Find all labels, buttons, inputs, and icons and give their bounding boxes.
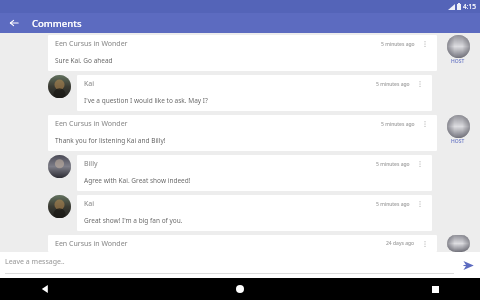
staticText: Leave a message..	[5, 257, 65, 267]
button[interactable]: Recents	[424, 278, 446, 300]
button[interactable]: Billy	[77, 155, 432, 191]
staticText: 5 minutes ago	[376, 81, 410, 88]
button[interactable]: More options	[420, 239, 430, 248]
button[interactable]: More options	[415, 199, 425, 209]
staticText: HOST	[451, 138, 465, 145]
button[interactable]: Een Cursus in Wonder	[48, 235, 437, 252]
button[interactable]	[48, 155, 71, 178]
staticText: 5 minutes ago	[376, 201, 410, 208]
staticText: 5 minutes ago	[381, 41, 415, 48]
staticText: I've a question I would like to ask. May…	[84, 96, 208, 105]
button[interactable]: Een Cursus in Wonder	[48, 35, 437, 71]
staticText: Kai	[84, 79, 95, 89]
staticText: Agree with Kai. Great show indeed!	[84, 176, 191, 185]
button[interactable]: More options	[415, 79, 425, 89]
button[interactable]: Kai	[77, 195, 432, 231]
button[interactable]: Een Cursus in Wonder	[48, 115, 437, 151]
button[interactable]: HOST	[442, 115, 474, 145]
button[interactable]: More options	[415, 159, 425, 169]
button[interactable]: Home	[229, 278, 251, 300]
staticText: 4:15	[463, 2, 476, 11]
button[interactable]: Back	[34, 278, 56, 300]
staticText: Thank you for listening Kai and Billy!	[55, 136, 166, 145]
staticText: Een Cursus in Wonder	[55, 39, 128, 49]
staticText: Een Cursus in Wonder	[55, 239, 128, 248]
button[interactable]: HOST	[442, 235, 474, 252]
staticText: Kai	[84, 199, 95, 209]
staticText: 5 minutes ago	[381, 121, 415, 128]
staticText: Sure Kai. Go ahead	[55, 56, 113, 65]
button[interactable]: HOST	[442, 35, 474, 65]
staticText: Comments	[32, 17, 82, 30]
staticText: HOST	[451, 58, 465, 65]
staticText: 5 minutes ago	[376, 161, 410, 168]
button[interactable]: Back	[0, 13, 28, 33]
button[interactable]	[48, 75, 71, 98]
button[interactable]	[48, 195, 71, 218]
staticText: 24 days ago	[386, 240, 415, 247]
button[interactable]: More options	[420, 39, 430, 49]
staticText: Great show! I'm a big fan of you.	[84, 216, 183, 225]
staticText: Een Cursus in Wonder	[55, 119, 128, 129]
staticText: Billy	[84, 159, 98, 169]
button[interactable]: Kai	[77, 75, 432, 111]
button[interactable]: Leave a message..	[5, 252, 454, 278]
button[interactable]: More options	[420, 119, 430, 129]
button[interactable]: Send	[460, 257, 476, 273]
